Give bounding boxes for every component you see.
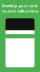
staticText: Develop your end- — [1, 3, 38, 8]
staticText: to-end talk online — [2, 8, 38, 14]
